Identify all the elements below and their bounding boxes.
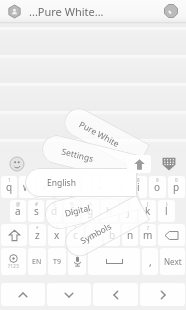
button[interactable]: Contact [0, 0, 29, 22]
button[interactable]: , [142, 248, 158, 275]
staticText: c [73, 228, 78, 242]
button[interactable]: l [158, 200, 175, 222]
staticText: EN [32, 257, 42, 267]
staticText: Pure White [77, 118, 121, 150]
staticText: r [61, 180, 66, 194]
staticText: $ [53, 201, 56, 207]
button[interactable]: q [1, 176, 17, 198]
button[interactable]: k [139, 200, 156, 222]
staticText: ! [129, 225, 131, 231]
button[interactable]: Symbols ?123 [1, 248, 26, 275]
staticText: " [56, 225, 58, 231]
staticText: s [34, 204, 39, 218]
staticText: English [47, 177, 76, 189]
button[interactable]: Move left [93, 283, 138, 306]
button[interactable]: s [28, 200, 44, 222]
button[interactable]: Backspace [158, 224, 185, 246]
button[interactable]: EN [28, 248, 46, 275]
button[interactable]: b [104, 224, 120, 246]
staticText: 2 [26, 177, 29, 183]
staticText: Symbols [78, 220, 114, 247]
button[interactable]: T9 [48, 248, 66, 275]
staticText: Digital [63, 202, 92, 220]
button[interactable]: a [10, 200, 26, 222]
button[interactable]: Keyboard layout [156, 154, 182, 174]
staticText: 1 [8, 177, 11, 183]
button[interactable]: u [111, 176, 128, 198]
staticText: w [23, 180, 31, 194]
staticText: l [165, 204, 168, 218]
staticText: : [93, 225, 95, 231]
staticText: ) [166, 201, 168, 207]
button[interactable]: g [82, 200, 99, 222]
button[interactable]: m [140, 224, 156, 246]
button[interactable]: Digital [42, 181, 142, 232]
staticText: z [35, 228, 40, 242]
button[interactable]: Space [88, 248, 140, 275]
staticText: # [35, 201, 38, 207]
staticText: o [154, 180, 161, 194]
staticText: g [87, 204, 94, 218]
button[interactable]: e [37, 176, 53, 198]
staticText: k [145, 204, 151, 218]
button[interactable]: c [67, 224, 84, 246]
button[interactable]: y [92, 176, 109, 198]
staticText: ? [147, 225, 149, 231]
button[interactable]: d [46, 200, 62, 222]
button[interactable]: Symbols [60, 195, 150, 262]
staticText: i [137, 180, 140, 194]
button[interactable]: Emoji [9, 156, 24, 171]
button[interactable]: Move right [140, 283, 185, 306]
staticText: x [54, 228, 60, 242]
button[interactable]: English [25, 168, 137, 197]
staticText: Next [164, 256, 182, 267]
button[interactable]: v [86, 224, 102, 246]
button[interactable]: Shift [1, 224, 27, 246]
button[interactable]: Call [156, 0, 186, 22]
staticText: h [106, 204, 113, 218]
staticText: % [70, 201, 74, 207]
button[interactable]: f [64, 200, 80, 222]
button[interactable]: o [149, 176, 166, 198]
button[interactable]: z [29, 224, 46, 246]
button[interactable]: j [120, 200, 137, 222]
button[interactable]: Theme [127, 155, 151, 173]
button[interactable]: Pure White [59, 103, 150, 170]
button[interactable]: r [55, 176, 71, 198]
staticText: Settings [60, 145, 95, 165]
staticText: d [51, 204, 58, 218]
button[interactable]: n [122, 224, 138, 246]
button[interactable] [0, 114, 186, 139]
staticText: 0 [175, 177, 178, 183]
button[interactable]: Voice input [68, 248, 86, 275]
button[interactable]: i [130, 176, 147, 198]
button[interactable] [0, 142, 186, 167]
button[interactable]: w [19, 176, 35, 198]
staticText: n [127, 228, 134, 242]
staticText: 9 [156, 177, 159, 183]
staticText: ( [147, 201, 149, 207]
staticText: j [127, 204, 130, 218]
button[interactable]: t [73, 176, 90, 198]
button[interactable]: Next [160, 248, 185, 275]
button[interactable]: x [48, 224, 65, 246]
staticText: , [149, 255, 152, 269]
staticText: * [36, 225, 39, 231]
staticText: m [143, 228, 153, 242]
staticText: p [173, 180, 180, 194]
button[interactable]: h [101, 200, 118, 222]
button[interactable]: Move up [1, 283, 45, 306]
button[interactable]: p [168, 176, 185, 198]
button[interactable]: Move down [47, 283, 91, 306]
button[interactable]: Settings [39, 132, 142, 184]
